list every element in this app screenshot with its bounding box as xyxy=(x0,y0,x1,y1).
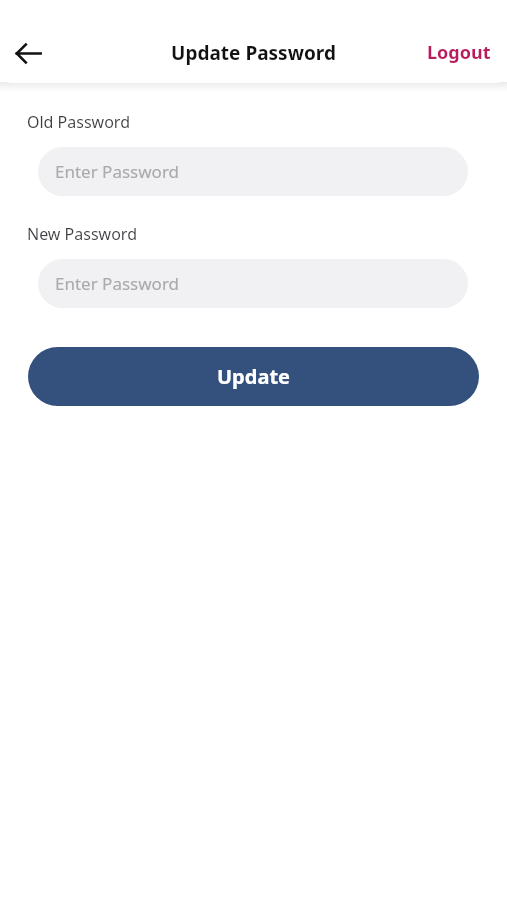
staticText: Enter Password xyxy=(55,160,180,183)
button[interactable]: Logout xyxy=(411,30,507,75)
button[interactable]: Enter Password xyxy=(38,259,468,308)
staticText: Update Password xyxy=(0,40,507,66)
button[interactable]: Update xyxy=(28,347,479,406)
button[interactable]: Enter Password xyxy=(38,147,468,196)
button[interactable]: Back xyxy=(6,31,50,75)
staticText: Old Password xyxy=(27,111,130,133)
staticText: Logout xyxy=(427,40,491,65)
staticText: Update xyxy=(217,363,290,390)
staticText: Enter Password xyxy=(55,272,180,295)
staticText: New Password xyxy=(27,223,137,245)
